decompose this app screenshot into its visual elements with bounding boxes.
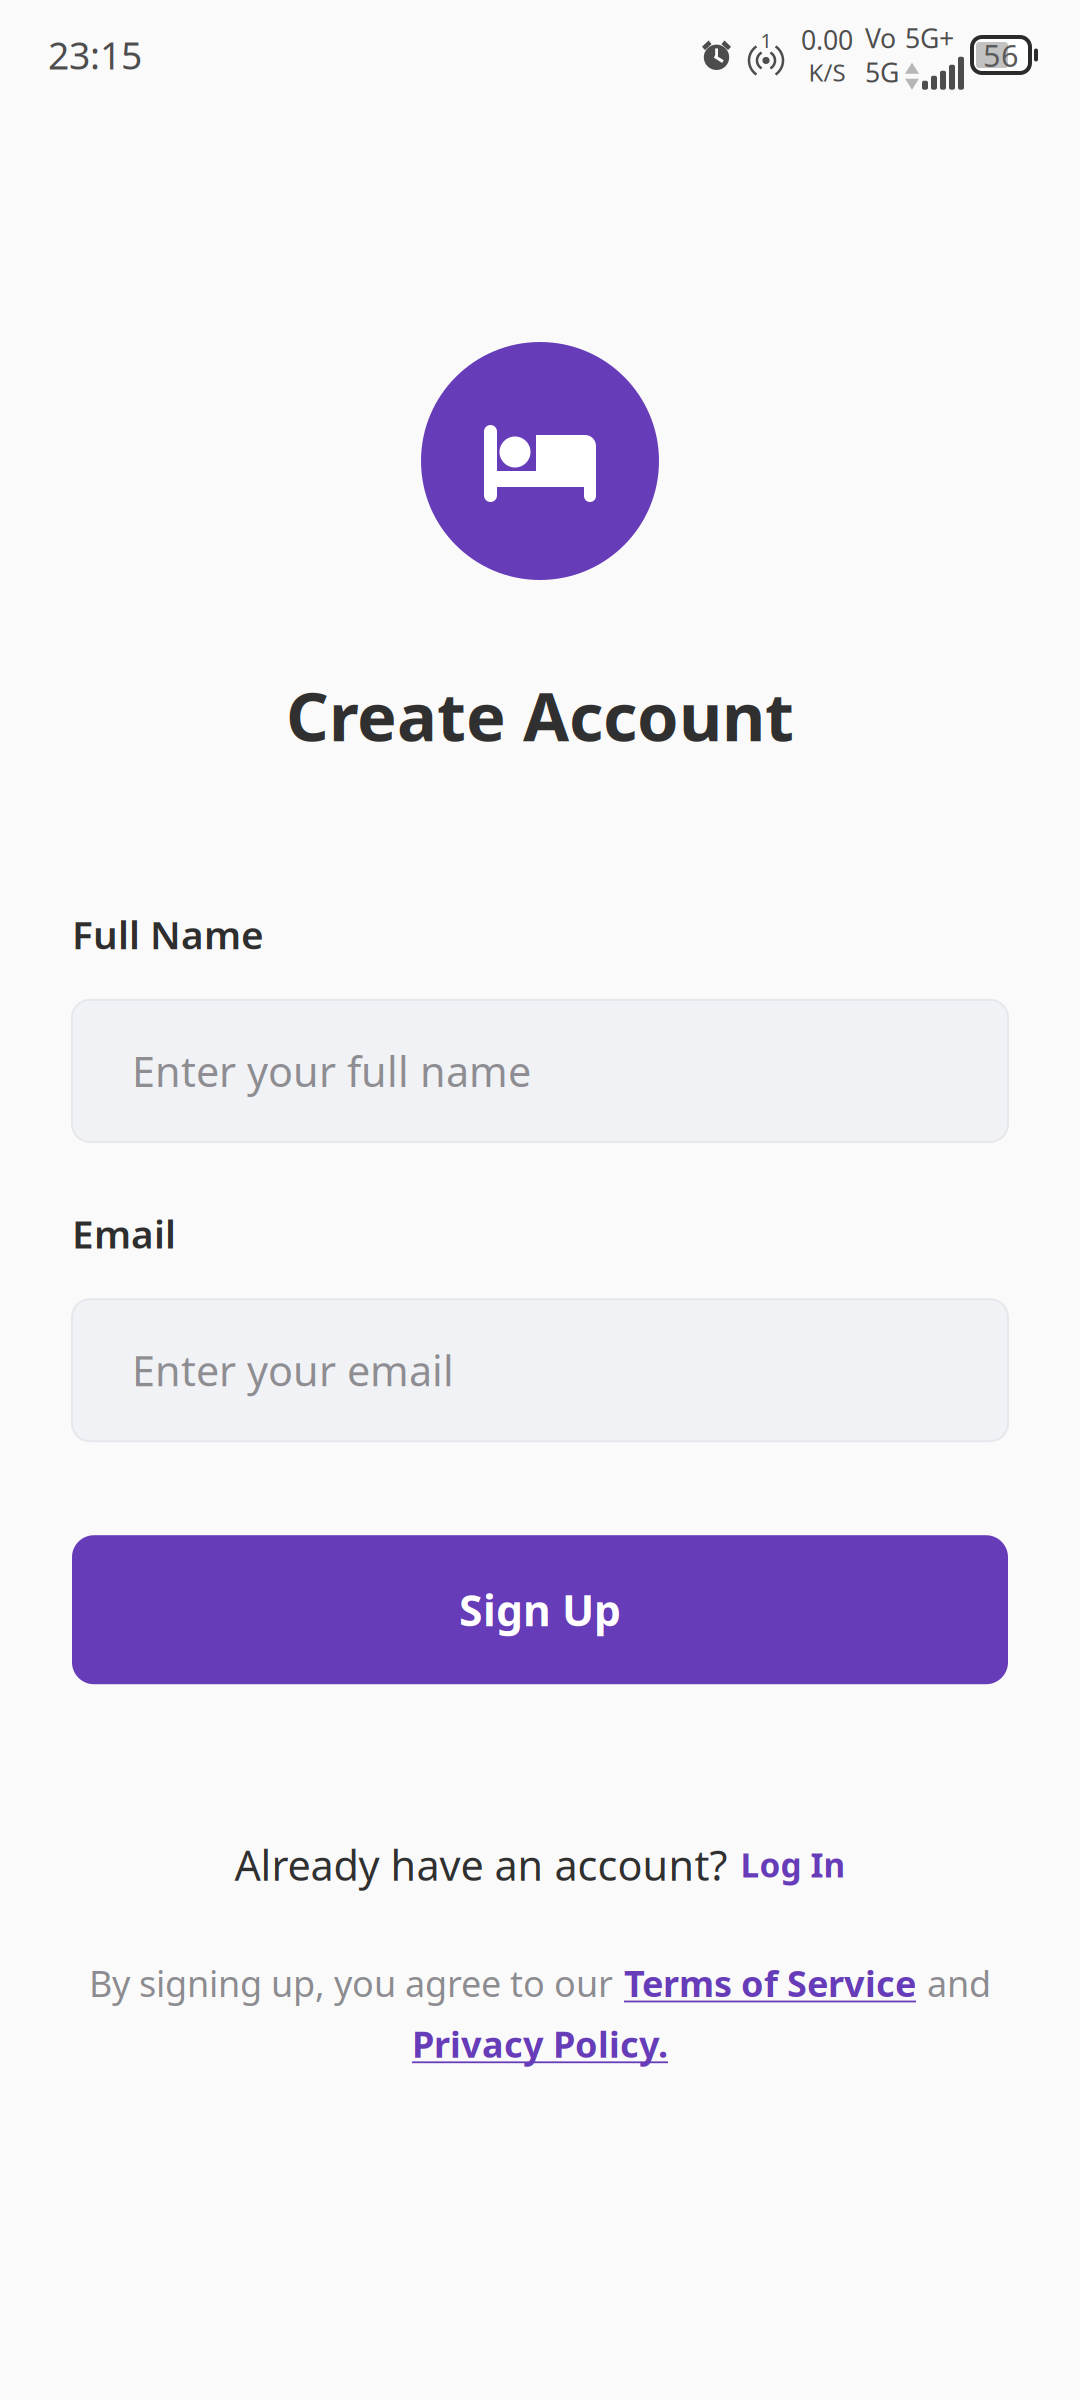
staticText: Email — [72, 1208, 176, 1259]
staticText: Log In — [740, 1842, 845, 1887]
staticText: 23:15 — [48, 30, 142, 80]
staticText: Already have an account? — [234, 1837, 727, 1892]
staticText: Full Name — [72, 908, 264, 960]
button[interactable]: Email — [72, 1299, 1008, 1441]
staticText: 5G+ — [905, 20, 954, 56]
staticText: Enter your full name — [132, 1043, 531, 1098]
staticText: 0.00 — [801, 22, 853, 57]
staticText: and — [927, 1959, 991, 2007]
staticText: Privacy Policy. — [412, 2020, 668, 2068]
staticText: Sign Up — [459, 1581, 621, 1638]
button[interactable]: Log In — [740, 1842, 845, 1887]
staticText: 5G — [865, 54, 899, 90]
button[interactable]: Terms of Service — [624, 1959, 916, 2007]
staticText: Create Account — [286, 671, 794, 759]
staticText: 1 — [760, 27, 771, 54]
staticText: Terms of Service — [624, 1959, 916, 2007]
staticText: K/S — [808, 56, 845, 88]
staticText: By signing up, you agree to our — [89, 1959, 613, 2007]
button[interactable]: Privacy Policy. — [412, 2020, 668, 2068]
staticText: Vo — [865, 20, 896, 55]
button[interactable]: Full Name — [72, 1000, 1008, 1142]
button[interactable]: Sign Up — [72, 1535, 1008, 1684]
staticText: 56 — [983, 35, 1019, 75]
staticText: Enter your email — [132, 1343, 454, 1398]
